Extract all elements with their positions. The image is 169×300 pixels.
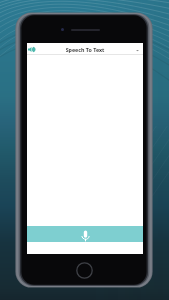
button[interactable]: Speak text aloud bbox=[27, 43, 38, 55]
button[interactable]: Start speech recognition bbox=[27, 226, 143, 242]
staticText: Speech To Text bbox=[27, 46, 143, 53]
button[interactable]: More options bbox=[131, 43, 143, 55]
